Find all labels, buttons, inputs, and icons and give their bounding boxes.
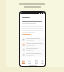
button[interactable]: Search xyxy=(26,59,32,64)
button[interactable] xyxy=(20,52,45,57)
button[interactable] xyxy=(22,34,31,35)
button[interactable]: Library xyxy=(33,59,39,64)
button[interactable] xyxy=(20,47,45,52)
button[interactable] xyxy=(20,37,45,42)
button[interactable]: Home xyxy=(20,59,26,64)
button[interactable] xyxy=(20,42,45,47)
button[interactable]: Profile xyxy=(39,59,45,64)
